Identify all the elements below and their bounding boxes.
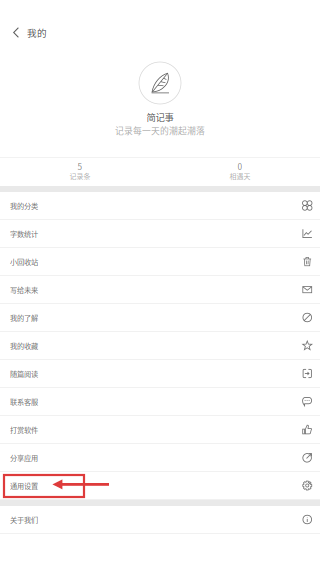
button[interactable]: 通用设置 [0,472,320,500]
staticText: 联系客服 [10,396,38,407]
staticText: 通用设置 [10,480,38,491]
staticText: 相遇天 [229,171,250,181]
button[interactable]: 我的分类 [0,192,320,220]
staticText: 我的收藏 [10,340,38,351]
staticText: 0 [237,160,242,172]
button[interactable]: 0 [160,157,320,186]
staticText: 关于我们 [10,514,38,525]
button[interactable]: 我的 [0,6,57,47]
staticText: 写给未来 [10,284,38,295]
button[interactable]: 字数统计 [0,220,320,248]
button[interactable]: 写给未来 [0,276,320,304]
button[interactable]: 分享应用 [0,444,320,472]
staticText: 小回收站 [10,256,38,267]
button[interactable]: 我的收藏 [0,332,320,360]
staticText: 分享应用 [10,452,38,463]
button[interactable]: 我的了解 [0,304,320,332]
button[interactable]: 联系客服 [0,388,320,416]
staticText: 简记事 [146,110,173,124]
button[interactable]: 打赏软件 [0,416,320,444]
staticText: 记录每一天的潮起潮落 [115,124,205,137]
staticText: 我的分类 [10,200,38,211]
staticText: 记录条 [69,171,90,181]
staticText: 字数统计 [10,228,38,239]
staticText: 我的 [27,25,47,39]
staticText: 打赏软件 [10,424,38,435]
staticText: 随篇阅读 [10,368,38,379]
button[interactable]: 小回收站 [0,248,320,276]
staticText: 我的了解 [10,312,38,323]
button[interactable]: 关于我们 [0,506,320,534]
staticText: 5 [77,160,82,172]
button[interactable]: 5 [0,157,160,186]
button[interactable]: 随篇阅读 [0,360,320,388]
